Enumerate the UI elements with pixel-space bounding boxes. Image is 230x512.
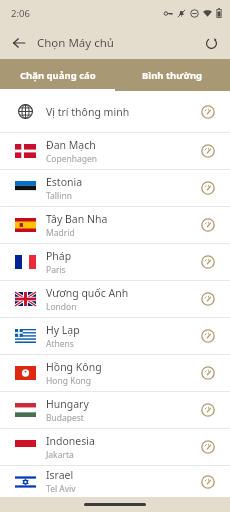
staticText: Israel	[46, 468, 74, 482]
button[interactable]: Israel	[0, 466, 230, 497]
button[interactable]: Vương quốc Anh	[0, 281, 230, 317]
staticText: Estonia	[46, 175, 83, 189]
button[interactable]: Tây Ban Nha	[0, 207, 230, 243]
button[interactable]: Hồng Kông	[0, 355, 230, 391]
button[interactable]: Refresh	[198, 30, 224, 56]
staticText: Copenhagen	[46, 153, 98, 165]
staticText: Hungary	[46, 397, 89, 411]
button[interactable]: Speed test	[196, 398, 220, 422]
button[interactable]: Speed test	[196, 100, 220, 124]
button[interactable]: Chặn quảng cáo	[0, 59, 115, 91]
staticText: Tel Aviv	[46, 483, 76, 495]
staticText: Pháp	[46, 249, 72, 263]
staticText: Hồng Kông	[46, 360, 102, 374]
button[interactable]: Pháp	[0, 244, 230, 280]
button[interactable]: Hy Lạp	[0, 318, 230, 354]
staticText: Hong Kong	[46, 375, 92, 387]
button[interactable]: Estonia	[0, 170, 230, 206]
button[interactable]: Hungary	[0, 392, 230, 428]
button[interactable]: Speed test	[196, 361, 220, 385]
staticText: Chọn Máy chủ	[37, 35, 114, 51]
button[interactable]: Bình thường	[115, 59, 230, 91]
staticText: Chặn quảng cáo	[20, 69, 96, 82]
button[interactable]: Vị trí thông minh	[0, 91, 230, 132]
button[interactable]: Speed test	[196, 213, 220, 237]
staticText: Athens	[46, 338, 74, 350]
staticText: Paris	[46, 264, 66, 276]
button[interactable]: Speed test	[196, 176, 220, 200]
staticText: Indonesia	[46, 434, 95, 448]
button[interactable]: Speed test	[196, 287, 220, 311]
button[interactable]: Indonesia	[0, 429, 230, 465]
staticText: Jakarta	[46, 449, 74, 461]
button[interactable]: Back	[6, 30, 32, 56]
button[interactable]: Speed test	[196, 470, 220, 494]
staticText: Tây Ban Nha	[46, 212, 108, 226]
staticText: Tallinn	[46, 190, 72, 202]
staticText: Hy Lạp	[46, 323, 80, 337]
staticText: London	[46, 301, 77, 313]
staticText: Budapest	[46, 412, 84, 424]
staticText: 2:06	[11, 7, 30, 20]
button[interactable]: Speed test	[196, 324, 220, 348]
button[interactable]: Speed test	[196, 139, 220, 163]
staticText: Vị trí thông minh	[46, 105, 130, 119]
staticText: Đan Mạch	[46, 138, 96, 152]
staticText: Madrid	[46, 227, 75, 239]
button[interactable]: Speed test	[196, 250, 220, 274]
button[interactable]: Speed test	[196, 435, 220, 459]
staticText: Bình thường	[142, 69, 203, 82]
button[interactable]: Đan Mạch	[0, 133, 230, 169]
staticText: Vương quốc Anh	[46, 286, 129, 300]
